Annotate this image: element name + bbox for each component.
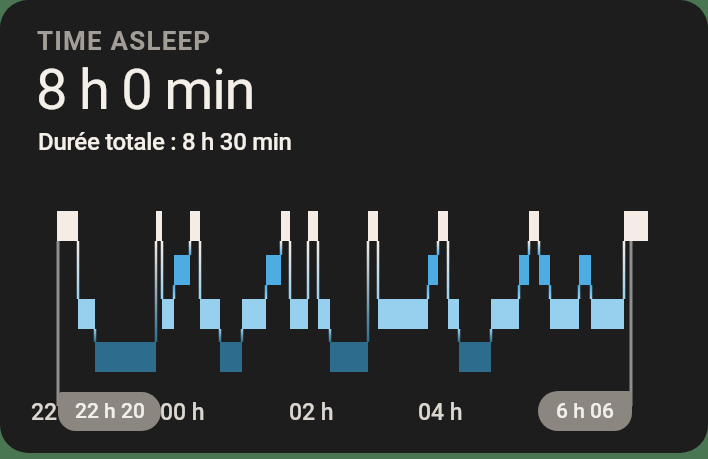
staticText: TIME ASLEEP <box>37 26 212 56</box>
staticText: 02 h <box>289 399 334 426</box>
button[interactable]: 22 h 20 <box>58 392 161 431</box>
staticText: 6 h 06 <box>556 399 614 424</box>
staticText: Durée totale : 8 h 30 min <box>38 128 292 156</box>
button[interactable]: TIME ASLEEP <box>0 0 708 453</box>
staticText: 22 h 20 <box>75 399 145 424</box>
staticText: 04 h <box>418 399 463 426</box>
staticText: 22 h <box>31 399 76 426</box>
button[interactable]: 6 h 06 <box>538 391 632 431</box>
staticText: 00 h <box>160 399 205 426</box>
staticText: 8 h 0 min <box>36 57 255 123</box>
